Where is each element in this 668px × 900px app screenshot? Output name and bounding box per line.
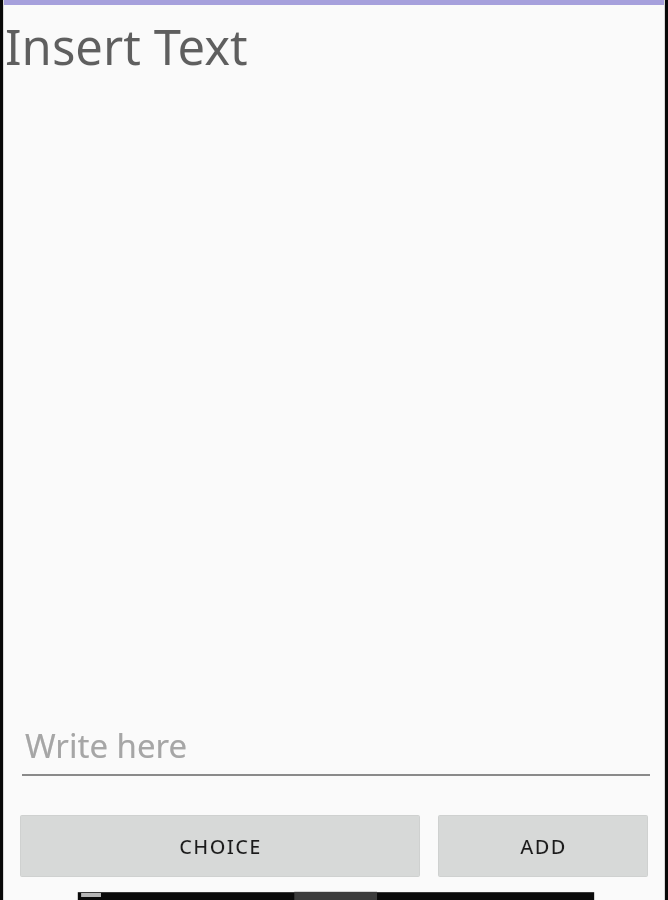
staticText: CHOICE xyxy=(179,833,262,860)
button[interactable]: CHOICE xyxy=(21,816,419,876)
staticText: ADD xyxy=(520,833,567,860)
button[interactable]: ADD xyxy=(439,816,647,876)
staticText: Insert Text xyxy=(5,13,248,80)
button[interactable]: Write here xyxy=(22,716,650,776)
staticText: Write here xyxy=(25,723,188,768)
